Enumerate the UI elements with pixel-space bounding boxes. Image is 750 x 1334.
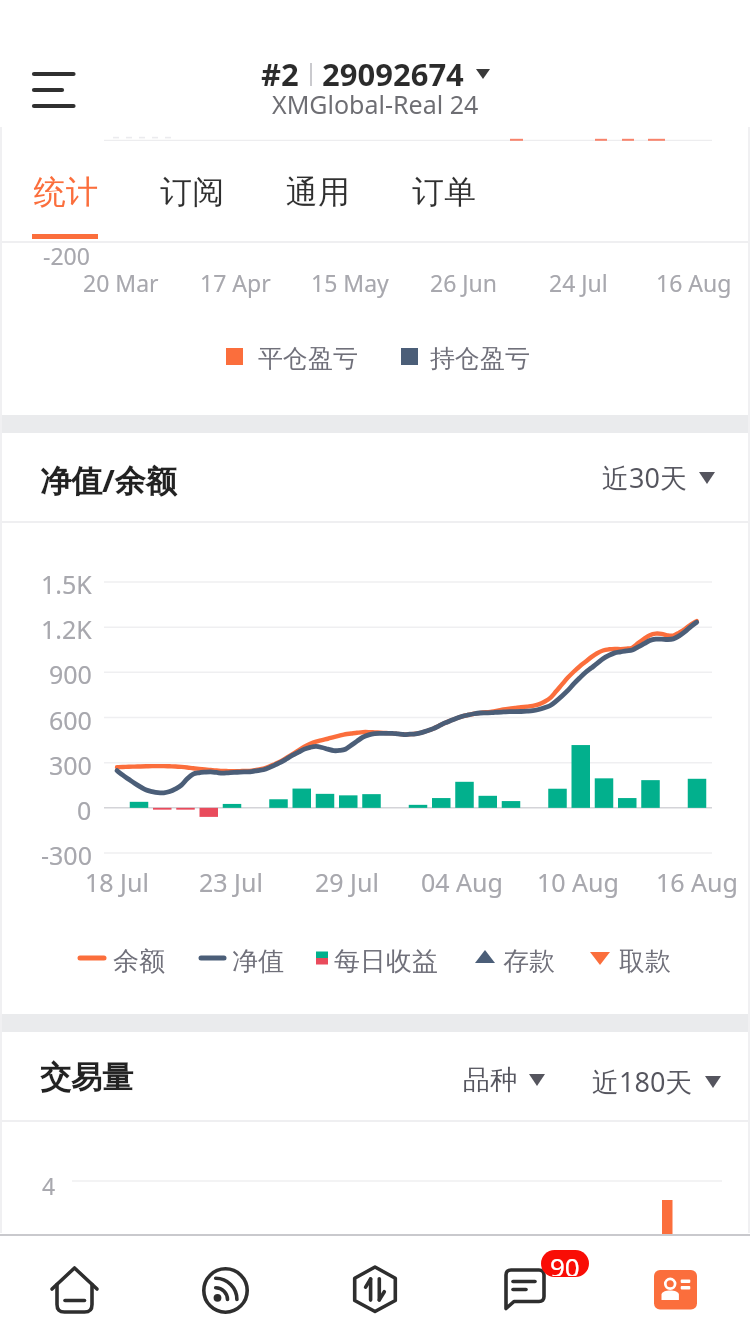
- staticText: 近30天: [602, 459, 687, 496]
- staticText: 900: [49, 657, 92, 691]
- staticText: 近180天: [592, 1063, 693, 1100]
- staticText: #2: [261, 53, 299, 95]
- staticText: 净值: [232, 945, 284, 978]
- staticText: 90: [550, 1250, 580, 1276]
- staticText: 余额: [113, 945, 165, 978]
- staticText: 18 Jul: [85, 865, 149, 899]
- button[interactable]: Home: [13, 1236, 137, 1334]
- staticText: 04 Aug: [421, 865, 503, 899]
- staticText: 持仓盈亏: [430, 343, 530, 374]
- button[interactable]: 订阅: [136, 144, 248, 240]
- button[interactable]: Account: [613, 1236, 737, 1334]
- staticText: 29 Jul: [315, 865, 379, 899]
- staticText: 统计: [34, 172, 98, 212]
- staticText: 取款: [619, 945, 671, 978]
- staticText: 1.2K: [41, 612, 92, 646]
- staticText: 0: [77, 793, 92, 827]
- button[interactable]: 近180天: [592, 1063, 721, 1100]
- staticText: 15 May: [311, 267, 389, 298]
- staticText: 10 Aug: [537, 865, 619, 899]
- button[interactable]: 统计: [10, 144, 122, 240]
- button[interactable]: Feed: [163, 1236, 287, 1334]
- staticText: 1.5K: [41, 567, 92, 601]
- staticText: -300: [41, 838, 92, 872]
- staticText: -200: [43, 240, 90, 271]
- staticText: 存款: [503, 945, 555, 978]
- staticText: 300: [49, 748, 92, 782]
- staticText: 每日收益: [334, 945, 438, 978]
- staticText: 净值/余额: [40, 459, 177, 501]
- staticText: 品种: [463, 1063, 517, 1097]
- staticText: 订阅: [160, 172, 224, 212]
- staticText: 16 Aug: [656, 865, 738, 899]
- staticText: 平仓盈亏: [258, 343, 358, 374]
- button[interactable]: 订单: [388, 144, 500, 240]
- staticText: 20 Mar: [83, 267, 159, 298]
- button[interactable]: 品种: [463, 1063, 545, 1097]
- staticText: 24 Jul: [549, 267, 608, 298]
- staticText: 订单: [412, 172, 476, 212]
- staticText: 16 Aug: [656, 267, 732, 298]
- button[interactable]: 近30天: [602, 459, 715, 496]
- button[interactable]: Trade: [313, 1236, 437, 1334]
- staticText: 通用: [286, 172, 350, 212]
- staticText: 23 Jul: [199, 865, 263, 899]
- staticText: 4: [42, 1170, 56, 1201]
- button[interactable]: Menu: [16, 56, 92, 124]
- staticText: 29092674: [322, 53, 464, 95]
- staticText: 26 Jun: [430, 267, 497, 298]
- staticText: 17 Apr: [200, 267, 271, 298]
- staticText: 交易量: [40, 1058, 133, 1097]
- staticText: 600: [49, 703, 92, 737]
- button[interactable]: 通用: [262, 144, 374, 240]
- button[interactable]: Messages: [463, 1236, 587, 1334]
- staticText: XMGlobal-Real 24: [272, 87, 479, 121]
